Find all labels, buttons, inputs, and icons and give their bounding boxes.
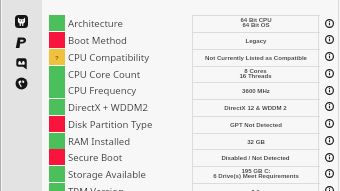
button[interactable]: DirectX 12 & WDDM 2 bbox=[192, 99, 319, 116]
staticText: 8 Cores bbox=[244, 67, 267, 74]
button[interactable]: Info bbox=[324, 101, 335, 112]
staticText: CPU Frequency bbox=[68, 84, 137, 97]
button[interactable]: RAM Installed bbox=[68, 133, 186, 149]
button[interactable]: DirectX + WDDM2 bbox=[68, 99, 186, 115]
button[interactable]: 64 Bit CPU bbox=[192, 15, 319, 32]
button[interactable]: CPU Frequency bbox=[68, 82, 186, 98]
button[interactable]: TPM Version bbox=[68, 183, 186, 191]
button[interactable]: 2.0 bbox=[192, 183, 319, 191]
staticText: Disk Partition Type bbox=[68, 118, 153, 131]
staticText: 32 GB bbox=[247, 138, 265, 145]
button[interactable]: Not Currently Listed as Compatible bbox=[192, 49, 319, 66]
staticText: Secure Boot bbox=[68, 151, 123, 164]
staticText: Not Currently Listed as Compatible bbox=[205, 54, 307, 61]
button[interactable]: Info bbox=[324, 185, 335, 191]
staticText: Legacy bbox=[245, 37, 267, 44]
staticText: Boot Method bbox=[68, 34, 128, 47]
button[interactable]: 195 GB C: bbox=[192, 166, 319, 183]
staticText: ? bbox=[55, 54, 59, 61]
button[interactable]: Boot Method bbox=[68, 32, 186, 48]
staticText: DirectX + WDDM2 bbox=[68, 101, 148, 114]
staticText: DirectX 12 & WDDM 2 bbox=[224, 104, 287, 111]
staticText: 195 GB C: bbox=[241, 167, 271, 174]
staticText: 2.0 bbox=[251, 188, 260, 191]
staticText: 64 Bit CPU bbox=[240, 16, 272, 23]
button[interactable]: Info bbox=[324, 135, 335, 146]
button[interactable]: CPU Compatibility bbox=[68, 49, 186, 65]
button[interactable]: CPU Core Count bbox=[68, 66, 186, 82]
staticText: CPU Compatibility bbox=[68, 51, 150, 64]
staticText: 16 Threads bbox=[239, 72, 272, 79]
button[interactable]: GitHub bbox=[15, 15, 28, 28]
button[interactable]: PayPal bbox=[15, 36, 28, 49]
button[interactable]: Info bbox=[324, 34, 335, 45]
button[interactable]: Storage Available bbox=[68, 166, 186, 182]
button[interactable]: Secure Boot bbox=[68, 149, 186, 165]
button[interactable]: Info bbox=[324, 18, 335, 29]
button[interactable]: Discord bbox=[15, 57, 28, 70]
button[interactable]: Legacy bbox=[192, 32, 319, 49]
button[interactable]: Website bbox=[15, 77, 28, 90]
button[interactable]: Info bbox=[324, 51, 335, 62]
button[interactable]: GPT Not Detected bbox=[192, 116, 319, 133]
button[interactable]: Info bbox=[324, 168, 335, 179]
staticText: Storage Available bbox=[68, 168, 146, 181]
button[interactable]: Architecture bbox=[68, 15, 186, 31]
button[interactable]: Disk Partition Type bbox=[68, 116, 186, 132]
button[interactable]: 32 GB bbox=[192, 133, 319, 150]
staticText: Disabled / Not Detected bbox=[221, 154, 290, 161]
staticText: 6 Drive(s) Meet Requirements bbox=[213, 172, 299, 179]
staticText: TPM Version bbox=[68, 185, 125, 191]
button[interactable]: Info bbox=[324, 118, 335, 129]
staticText: RAM Installed bbox=[68, 135, 131, 148]
button[interactable]: Info bbox=[324, 152, 335, 163]
staticText: 64 Bit OS bbox=[242, 21, 270, 28]
staticText: GPT Not Detected bbox=[230, 121, 282, 128]
button[interactable]: 8 Cores bbox=[192, 66, 319, 83]
staticText: 3600 MHz bbox=[242, 87, 270, 94]
button[interactable]: Info bbox=[324, 68, 335, 79]
button[interactable]: 3600 MHz bbox=[192, 82, 319, 99]
staticText: CPU Core Count bbox=[68, 68, 141, 81]
button[interactable]: Info bbox=[324, 85, 335, 96]
staticText: Architecture bbox=[68, 17, 123, 30]
button[interactable]: Disabled / Not Detected bbox=[192, 149, 319, 166]
